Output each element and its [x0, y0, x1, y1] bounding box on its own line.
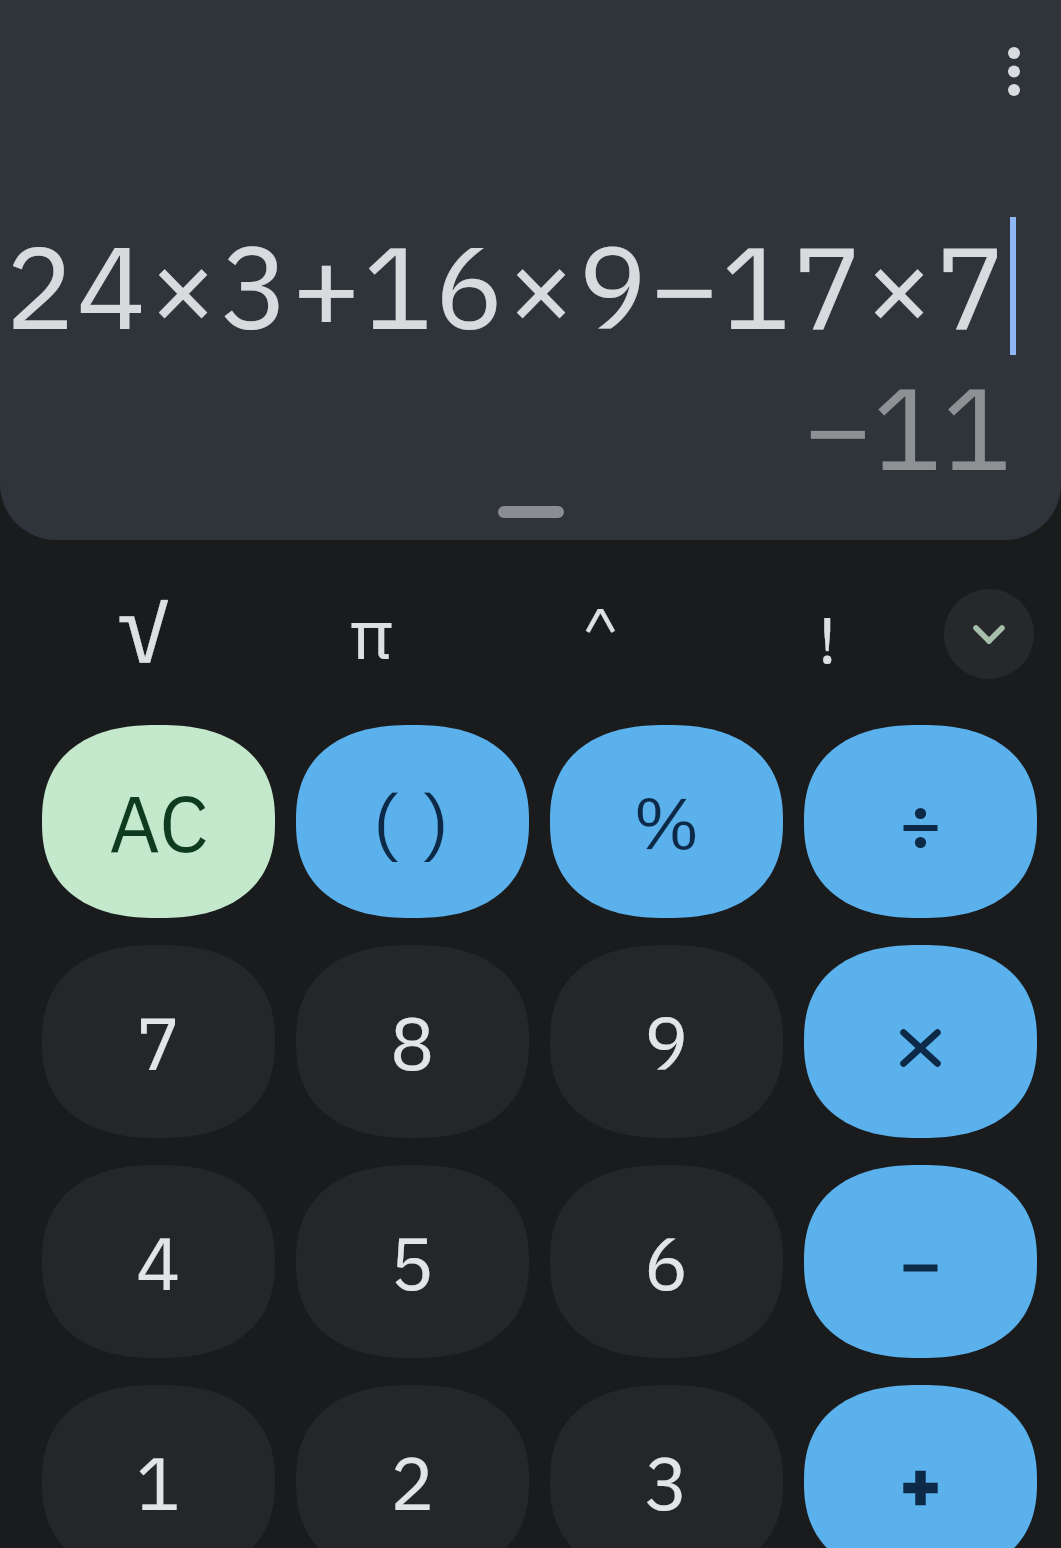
button[interactable] — [804, 1165, 1037, 1358]
button[interactable] — [804, 1385, 1037, 1548]
staticText: 4 — [136, 1214, 181, 1310]
button[interactable]: 7 — [42, 945, 275, 1138]
staticText: ^ — [583, 591, 618, 666]
staticText: AC — [109, 770, 209, 874]
button[interactable]: 4 — [42, 1165, 275, 1358]
staticText: 7 — [136, 994, 181, 1090]
button[interactable]: % — [550, 725, 783, 918]
staticText: −11 — [803, 351, 1012, 471]
button[interactable]: ^ — [540, 563, 660, 673]
button[interactable]: 8 — [296, 945, 529, 1138]
staticText: π — [350, 587, 394, 678]
staticText: 1 — [136, 1434, 181, 1530]
button[interactable]: AC — [42, 725, 275, 918]
button[interactable] — [804, 945, 1037, 1138]
button[interactable] — [944, 589, 1034, 679]
button[interactable]: 1 — [42, 1385, 275, 1548]
staticText: ! — [818, 596, 837, 681]
button[interactable]: √ — [84, 576, 204, 686]
button[interactable]: 2 — [296, 1385, 529, 1548]
button[interactable]: π — [312, 585, 432, 695]
staticText: % — [633, 775, 700, 869]
button[interactable]: ! — [767, 583, 887, 693]
staticText: 8 — [390, 994, 435, 1090]
button[interactable]: 5 — [296, 1165, 529, 1358]
button[interactable] — [804, 725, 1037, 918]
button[interactable]: 9 — [550, 945, 783, 1138]
button[interactable]: 3 — [550, 1385, 783, 1548]
staticText: 24×3+16×9−17×7 — [5, 210, 1008, 361]
staticText: √ — [117, 571, 171, 681]
staticText: 2 — [390, 1434, 435, 1530]
staticText: 3 — [644, 1434, 689, 1530]
button[interactable]: ( ) — [296, 725, 529, 918]
staticText: ( ) — [372, 772, 454, 872]
button[interactable]: 6 — [550, 1165, 783, 1358]
staticText: 6 — [644, 1214, 689, 1310]
button[interactable] — [984, 33, 1044, 111]
staticText: 5 — [390, 1214, 435, 1310]
staticText: 9 — [644, 994, 689, 1090]
